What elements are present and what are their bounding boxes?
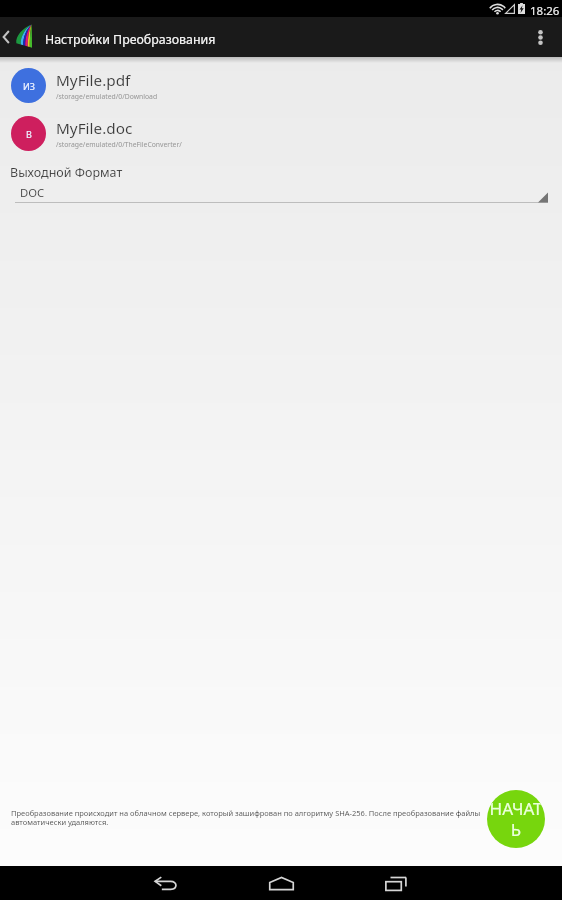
staticText: НАЧАТЬ bbox=[487, 797, 545, 841]
button[interactable]: Recent apps bbox=[373, 866, 419, 900]
staticText: /storage/emulated/0/Download bbox=[56, 92, 158, 101]
staticText: MyFile.pdf bbox=[56, 70, 131, 91]
button[interactable]: DOC bbox=[0, 183, 562, 205]
staticText: DOC bbox=[20, 185, 45, 200]
button[interactable]: В bbox=[0, 111, 562, 155]
staticText: /storage/emulated/0/TheFileConverter/ bbox=[56, 140, 182, 149]
staticText: Преобразование происходит на облачном се… bbox=[11, 808, 511, 828]
button[interactable]: ИЗ bbox=[0, 63, 562, 107]
button[interactable]: Back bbox=[143, 866, 189, 900]
staticText: ИЗ bbox=[23, 80, 35, 92]
staticText: Выходной Формат bbox=[10, 164, 123, 181]
button[interactable]: НАЧАТЬ bbox=[487, 790, 545, 848]
staticText: 18:26 bbox=[530, 3, 560, 19]
staticText: В bbox=[26, 128, 32, 140]
button[interactable]: Back bbox=[0, 17, 16, 57]
button[interactable]: More options bbox=[526, 17, 556, 57]
staticText: Настройки Преобразования bbox=[45, 31, 216, 48]
staticText: MyFile.doc bbox=[56, 118, 133, 139]
button[interactable]: Home bbox=[258, 866, 304, 900]
